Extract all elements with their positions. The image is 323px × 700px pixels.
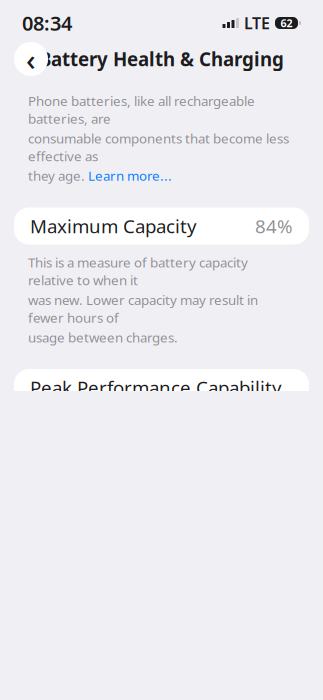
staticText: consumable components that become less e… [28,129,289,165]
staticText: they age. [28,167,85,184]
staticText: Battery Health & Charging [39,47,284,71]
staticText: 08:34 [22,10,72,36]
staticText: 62 [280,16,292,30]
staticText: LTE [244,12,270,34]
staticText: This is a measure of battery capacity re… [28,253,248,289]
staticText: was new. Lower capacity may result in fe… [28,291,258,326]
button[interactable]: Peak Performance Capability [14,369,309,406]
staticText: Peak Performance Capability [30,375,282,400]
button[interactable]: Maximum Capacity [14,207,309,244]
button[interactable]: Learn more... [88,167,172,184]
staticText: usage between charges. [28,328,178,346]
staticText: ‹ [26,39,36,78]
button[interactable]: Back [14,42,48,76]
staticText: Learn more... [88,167,172,184]
staticText: Phone batteries, like all rechargeable b… [28,92,255,127]
staticText: 84% [255,214,293,238]
staticText: Maximum Capacity [30,214,197,238]
